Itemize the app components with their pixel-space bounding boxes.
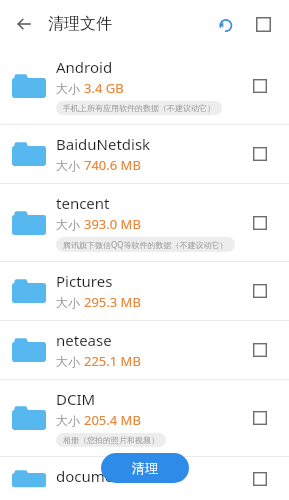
staticText: 腾讯旗下微信QQ等软件的数据（不建议动它） xyxy=(63,239,228,250)
staticText: 大小 xyxy=(56,216,84,232)
staticText: DCIM xyxy=(56,389,96,409)
button[interactable]: Pictures xyxy=(0,262,289,320)
staticText: 740.6 MB xyxy=(84,156,141,174)
staticText: 清理文件 xyxy=(48,14,112,34)
button[interactable]: Select documents xyxy=(243,466,277,491)
button[interactable]: BaiduNetdisk xyxy=(0,125,289,183)
staticText: BaiduNetdisk xyxy=(56,134,151,154)
staticText: 手机上所有应用软件的数据（不建议动它） xyxy=(63,103,215,113)
staticText: 205.4 MB xyxy=(84,411,141,429)
button[interactable]: tencent xyxy=(0,184,289,261)
button[interactable]: Select Android xyxy=(243,69,277,103)
button[interactable]: Select DCIM xyxy=(243,401,277,435)
button[interactable]: Select tencent xyxy=(243,206,277,240)
staticText: 225.1 MB xyxy=(84,352,141,370)
staticText: 清理 xyxy=(132,460,158,476)
staticText: documents xyxy=(56,466,136,486)
staticText: Android xyxy=(56,57,113,77)
staticText: 大小 xyxy=(56,353,84,369)
staticText: tencent xyxy=(56,193,110,213)
staticText: 大小 xyxy=(56,80,84,96)
staticText: 295.3 MB xyxy=(84,293,141,311)
button[interactable]: Select BaiduNetdisk xyxy=(243,137,277,171)
staticText: 大小 xyxy=(56,412,84,428)
staticText: 大小 xyxy=(56,157,84,173)
staticText: 大小 xyxy=(56,294,84,310)
staticText: 3.4 GB xyxy=(84,79,124,97)
staticText: 相册（您拍的照片和视频） xyxy=(63,435,159,445)
staticText: Pictures xyxy=(56,271,113,291)
button[interactable]: Select netease xyxy=(243,333,277,367)
button[interactable]: DCIM xyxy=(0,380,289,456)
button[interactable]: Select Pictures xyxy=(243,274,277,308)
staticText: 393.0 MB xyxy=(84,215,141,233)
button[interactable]: documents xyxy=(0,457,289,500)
button[interactable]: Select all xyxy=(247,8,279,40)
button[interactable]: Back xyxy=(6,6,42,42)
button[interactable]: netease xyxy=(0,321,289,379)
button[interactable]: Android xyxy=(0,48,289,124)
staticText: netease xyxy=(56,330,112,350)
button[interactable]: Restore xyxy=(209,8,241,40)
button[interactable]: 清理 xyxy=(101,453,189,483)
